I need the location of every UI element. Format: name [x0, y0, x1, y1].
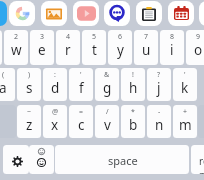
staticText: @	[52, 107, 59, 117]
staticText: *	[131, 107, 135, 117]
button[interactable]: More	[199, 1, 204, 26]
staticText: 3	[40, 32, 45, 42]
button[interactable]: space	[55, 145, 189, 174]
staticText: !	[132, 70, 134, 80]
staticText: 4	[66, 32, 71, 42]
button[interactable]: Google	[9, 1, 35, 26]
button[interactable]: )	[17, 68, 41, 101]
staticText: v	[104, 116, 111, 134]
staticText: '	[80, 70, 82, 80]
button[interactable]: 2	[4, 30, 28, 65]
button[interactable]: 4	[56, 30, 80, 65]
button[interactable]: =	[69, 105, 93, 138]
button[interactable]: &	[95, 68, 119, 101]
staticText: 7	[144, 32, 149, 42]
staticText: f	[79, 79, 84, 97]
button[interactable]: @	[43, 105, 67, 138]
button[interactable]: -	[147, 105, 171, 138]
staticText: 8	[170, 32, 175, 42]
staticText: 9	[196, 32, 201, 42]
staticText: space	[108, 153, 138, 168]
staticText: e	[38, 41, 46, 59]
staticText: d	[51, 79, 60, 97]
button[interactable]: YouTube	[73, 1, 99, 26]
button[interactable]: Emoji	[29, 145, 54, 174]
button[interactable]: Clipboard	[136, 1, 162, 26]
staticText: '	[184, 70, 186, 80]
staticText: x	[51, 116, 59, 134]
staticText: n	[155, 116, 164, 134]
staticText: (	[2, 70, 5, 80]
staticText: j	[157, 79, 161, 97]
staticText: +	[183, 107, 188, 117]
staticText: =	[79, 107, 84, 117]
staticText: m	[179, 116, 192, 134]
staticText: )	[28, 70, 31, 80]
staticText: c	[78, 116, 85, 134]
staticText: t	[92, 41, 97, 59]
staticText: o	[194, 41, 203, 59]
staticText: ~	[27, 107, 32, 117]
button[interactable]: '	[69, 68, 93, 101]
staticText: 2	[14, 32, 19, 42]
staticText: &	[104, 70, 110, 80]
button[interactable]: Settings	[3, 145, 29, 174]
button[interactable]: 3	[30, 30, 54, 65]
staticText: a	[0, 79, 7, 97]
staticText: ?	[157, 70, 161, 80]
button[interactable]: Calendar	[168, 1, 194, 26]
button[interactable]: return	[191, 145, 204, 174]
button[interactable]: 6	[108, 30, 132, 65]
button[interactable]: Messages	[104, 1, 130, 26]
button[interactable]: 7	[134, 30, 158, 65]
staticText: r	[65, 41, 71, 59]
button[interactable]: 9	[186, 30, 204, 65]
staticText: /	[106, 107, 109, 117]
button[interactable]: +	[173, 105, 197, 138]
button[interactable]: 8	[160, 30, 184, 65]
button[interactable]: (	[0, 68, 15, 101]
staticText: h	[129, 79, 138, 97]
button[interactable]: !	[121, 68, 145, 101]
staticText: -	[158, 107, 161, 117]
button[interactable]: :	[43, 68, 67, 101]
staticText: w	[11, 41, 22, 59]
button[interactable]: ?	[147, 68, 171, 101]
staticText: i	[170, 41, 174, 59]
button[interactable]: Photos	[41, 1, 67, 26]
staticText: s	[26, 79, 33, 97]
button[interactable]: ~	[17, 105, 41, 138]
staticText: g	[103, 79, 112, 97]
staticText: :	[54, 70, 56, 80]
staticText: 5	[92, 32, 97, 42]
staticText: b	[129, 116, 138, 134]
staticText: 6	[118, 32, 123, 42]
button[interactable]: *	[121, 105, 145, 138]
staticText: k	[181, 79, 189, 97]
button[interactable]: '	[173, 68, 197, 101]
staticText: return	[199, 154, 204, 174]
staticText: y	[117, 41, 124, 59]
button[interactable]: /	[95, 105, 119, 138]
button[interactable]: 1	[0, 30, 2, 65]
button[interactable]: 5	[82, 30, 106, 65]
staticText: z	[26, 116, 33, 134]
staticText: u	[142, 41, 151, 59]
